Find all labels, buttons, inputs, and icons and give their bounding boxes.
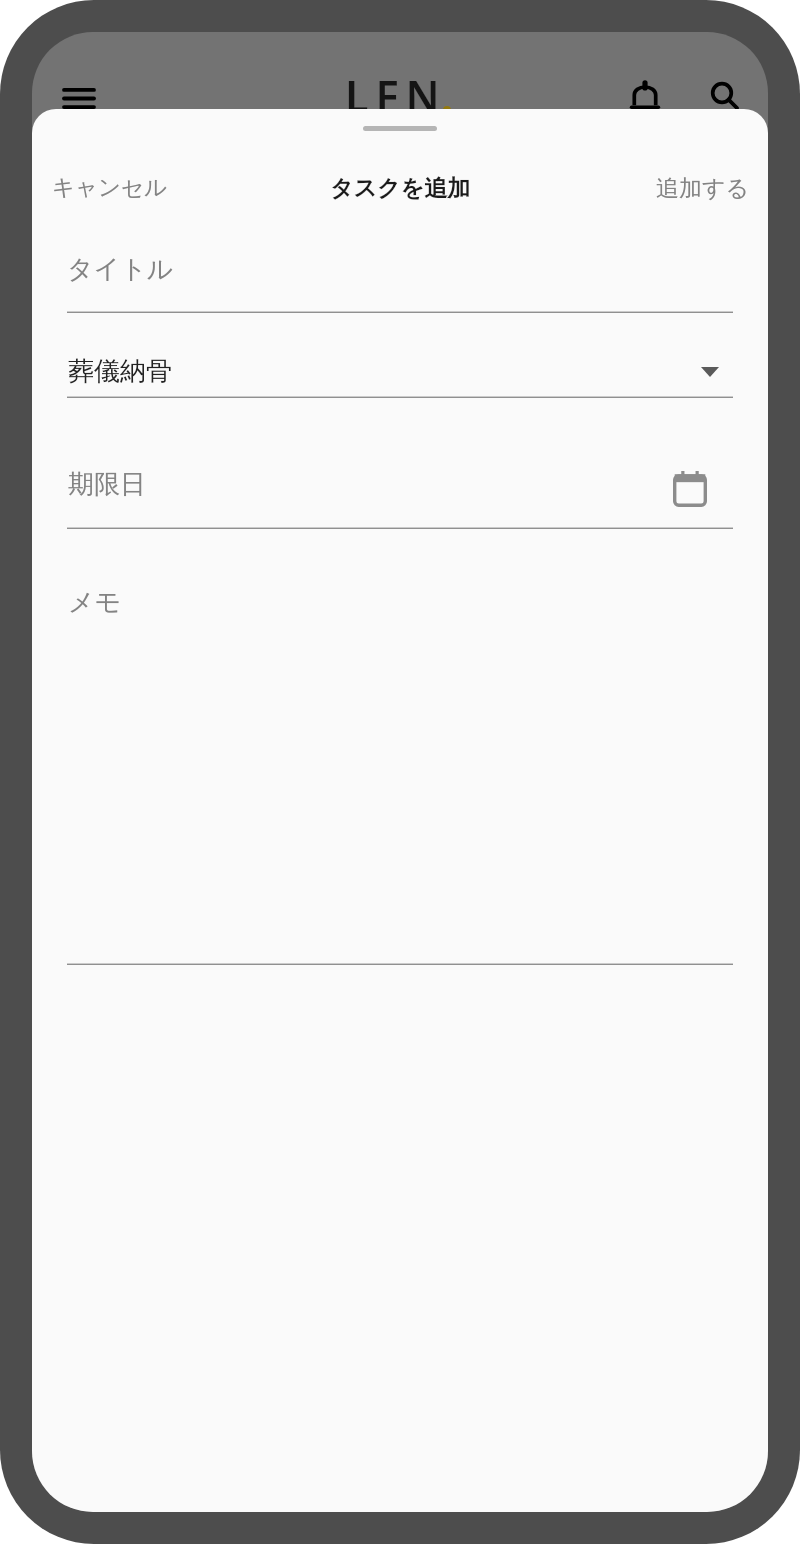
button[interactable]: Menu [51, 70, 107, 126]
staticText: 追加する [656, 174, 750, 203]
button[interactable]: Pick due date [67, 454, 733, 528]
button[interactable]: Category [67, 334, 733, 397]
button[interactable]: キャンセル [34, 160, 186, 214]
staticText: メモ [68, 586, 122, 619]
staticText: LFN [345, 66, 447, 125]
button[interactable]: Notifications [617, 67, 673, 123]
staticText: 期限日 [68, 468, 146, 501]
staticText: 葬儀納骨 [68, 355, 172, 388]
button[interactable]: メモ [67, 569, 733, 964]
button[interactable]: Search [694, 65, 750, 121]
staticText: タイトル [67, 253, 174, 286]
staticText: タスクを追加 [330, 174, 471, 203]
button[interactable]: 追加する [638, 161, 768, 215]
button[interactable]: タイトル [67, 239, 733, 313]
staticText: キャンセル [52, 173, 168, 201]
